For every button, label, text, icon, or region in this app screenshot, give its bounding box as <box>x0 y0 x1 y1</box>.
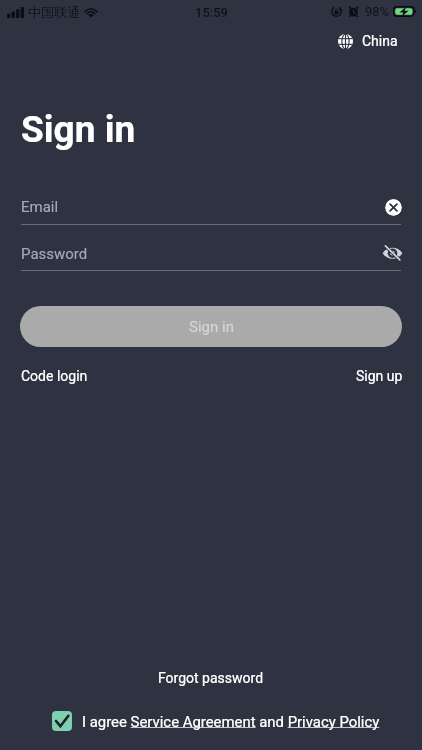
staticText: China <box>362 33 398 49</box>
staticText: Email <box>21 198 59 216</box>
staticText: 15:59 <box>195 5 228 20</box>
button[interactable]: I agree Service Agreement and Privacy Po… <box>82 713 380 730</box>
button[interactable]: Show password <box>381 241 404 264</box>
staticText: Password <box>21 245 88 263</box>
button[interactable]: I agree <box>52 711 72 731</box>
button[interactable]: Sign up <box>356 368 403 384</box>
staticText: Sign in <box>21 108 136 151</box>
staticText: Sign in <box>189 318 234 336</box>
staticText: 中国联通 <box>28 4 80 20</box>
button[interactable]: Sign in <box>20 306 402 347</box>
button[interactable]: Forgot password <box>158 670 264 686</box>
button[interactable]: Code login <box>21 368 88 384</box>
button[interactable]: Clear email <box>385 199 402 216</box>
staticText: 98% <box>365 4 390 19</box>
button[interactable]: China <box>338 33 398 49</box>
